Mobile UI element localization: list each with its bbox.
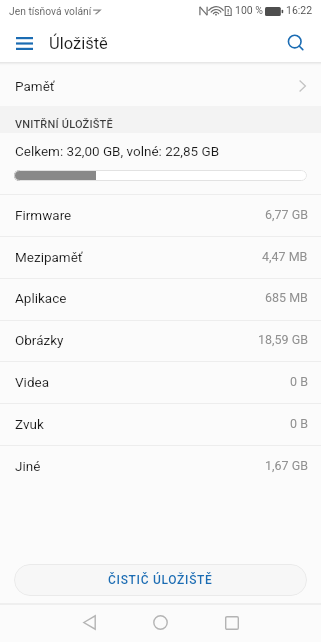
button[interactable]: Jiné [0, 445, 321, 486]
staticText: Jiné [15, 458, 41, 474]
staticText: 685 MB [265, 290, 308, 305]
staticText: 1,67 GB [265, 458, 308, 473]
button[interactable]: Recent apps [210, 603, 254, 642]
staticText: Úložiště [49, 34, 108, 53]
button[interactable]: Zvuk [0, 403, 321, 444]
staticText: Firmware [15, 207, 72, 223]
staticText: 6,77 GB [265, 207, 308, 222]
staticText: 16:22 [286, 4, 313, 16]
staticText: Zvuk [15, 416, 44, 432]
button[interactable]: Firmware [0, 194, 321, 235]
staticText: Obrázky [15, 332, 64, 348]
staticText: Mezipaměť [15, 249, 83, 265]
staticText: VNITŘNÍ ÚLOŽIŠTĚ [15, 118, 113, 131]
staticText: Paměť [15, 78, 55, 94]
staticText: ČISTIČ ÚLOŽIŠTĚ [108, 573, 213, 587]
staticText: 4,47 MB [262, 249, 308, 264]
staticText: Videa [15, 374, 49, 390]
staticText: 18,59 GB [258, 332, 308, 347]
button[interactable]: Mezipaměť [0, 236, 321, 277]
staticText: 0 B [290, 374, 308, 389]
staticText: Jen tísňová volání [9, 5, 92, 17]
button[interactable]: Paměť [0, 65, 321, 107]
staticText: 0 B [290, 416, 308, 431]
staticText: Aplikace [15, 290, 67, 306]
button[interactable]: Aplikace [0, 277, 321, 318]
button[interactable]: Search [277, 22, 313, 63]
staticText: Celkem: 32,00 GB, volné: 22,85 GB [15, 143, 220, 159]
button[interactable]: Videa [0, 361, 321, 402]
button[interactable]: Back [67, 603, 111, 642]
staticText: 100 % [235, 4, 263, 16]
button[interactable]: Home [138, 603, 182, 642]
button[interactable]: Navigation menu [8, 22, 41, 63]
button[interactable]: ČISTIČ ÚLOŽIŠTĚ [14, 564, 307, 596]
button[interactable]: Obrázky [0, 319, 321, 360]
